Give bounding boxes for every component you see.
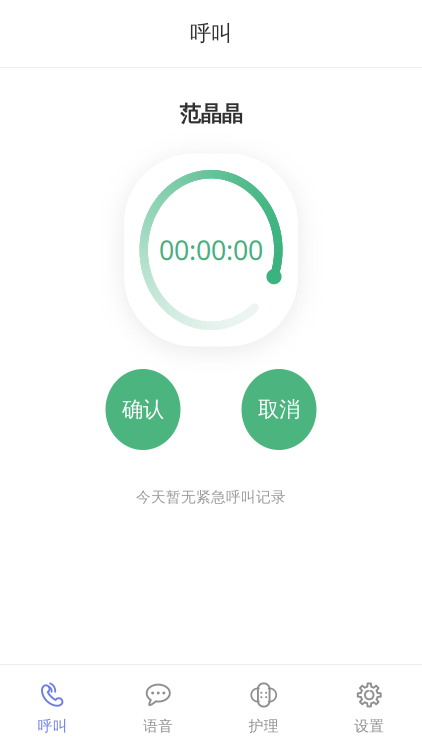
button[interactable]: 护理 [211, 665, 316, 750]
staticText: 今天暂无紧急呼叫记录 [136, 488, 286, 506]
staticText: 呼叫 [38, 717, 68, 735]
button[interactable]: 取消 [241, 369, 316, 450]
staticText: 呼叫 [190, 20, 232, 47]
staticText: 护理 [249, 717, 279, 735]
staticText: 设置 [354, 717, 384, 735]
staticText: 取消 [258, 396, 300, 423]
staticText: 00:00:00 [159, 232, 263, 268]
button[interactable]: 呼叫 [0, 665, 105, 750]
staticText: 语音 [143, 717, 173, 735]
staticText: 范晶晶 [179, 101, 242, 127]
button[interactable]: 确认 [105, 369, 180, 450]
button[interactable]: 语音 [105, 665, 211, 750]
staticText: 确认 [122, 396, 164, 423]
button[interactable]: 设置 [316, 665, 422, 750]
